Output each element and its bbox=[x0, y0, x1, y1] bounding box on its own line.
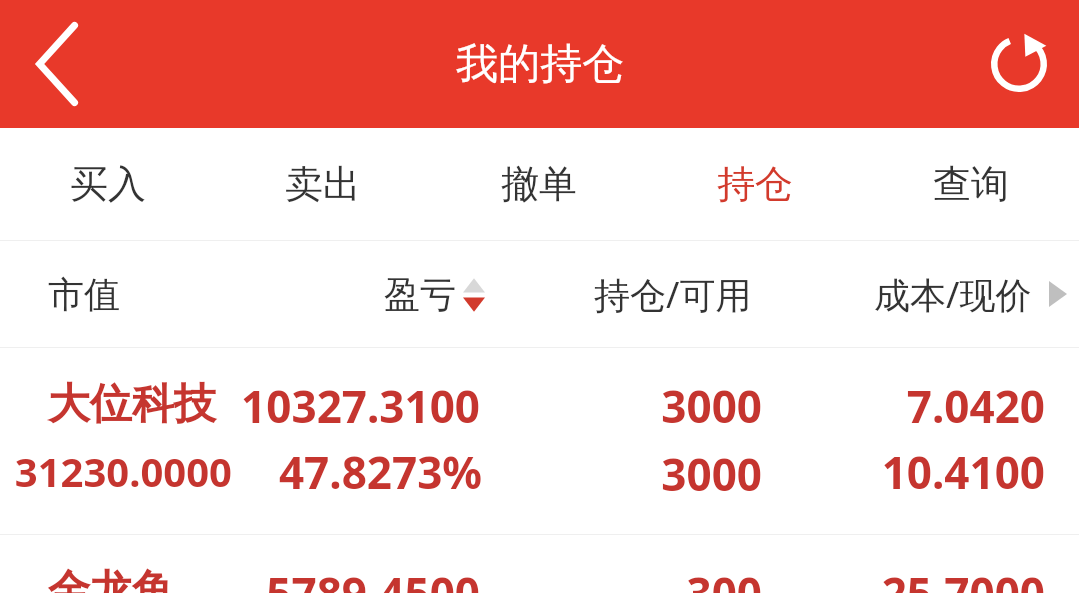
button[interactable]: More columns bbox=[1044, 274, 1072, 314]
staticText: 卖出 bbox=[285, 160, 361, 208]
staticText: 25.7000 bbox=[0, 563, 1045, 593]
staticText: 成本/现价 bbox=[874, 270, 1032, 319]
staticText: 查询 bbox=[933, 160, 1009, 208]
button[interactable]: 金龙鱼 bbox=[0, 535, 1079, 593]
button[interactable]: 大位科技 bbox=[0, 348, 1079, 534]
staticText: 300 bbox=[0, 563, 762, 593]
staticText: 持仓/可用 bbox=[594, 270, 752, 319]
staticText: 5789.4500 bbox=[0, 563, 480, 593]
staticText: 大位科技 bbox=[48, 378, 216, 431]
button[interactable]: 卖出 bbox=[215, 128, 431, 240]
staticText: 撤单 bbox=[501, 160, 577, 208]
button[interactable]: 买入 bbox=[0, 128, 215, 240]
staticText: 盈亏 bbox=[384, 272, 456, 317]
staticText: 我的持仓 bbox=[456, 38, 624, 91]
button[interactable]: 查询 bbox=[863, 128, 1079, 240]
staticText: 持仓 bbox=[717, 160, 793, 208]
staticText: 3000 bbox=[0, 376, 762, 436]
staticText: 10.4100 bbox=[0, 442, 1045, 502]
staticText: 买入 bbox=[70, 160, 146, 208]
button[interactable]: 市值 bbox=[48, 272, 120, 317]
button[interactable]: 盈亏 bbox=[384, 272, 485, 317]
button[interactable]: Refresh bbox=[959, 0, 1079, 128]
staticText: 市值 bbox=[48, 272, 120, 317]
button[interactable]: 撤单 bbox=[431, 128, 647, 240]
staticText: 31230.0000 bbox=[0, 444, 232, 498]
button[interactable]: Back bbox=[0, 0, 116, 128]
button[interactable]: 持仓 bbox=[647, 128, 863, 240]
staticText: 10327.3100 bbox=[0, 376, 480, 436]
staticText: 金龙鱼 bbox=[48, 565, 174, 593]
staticText: 47.8273% bbox=[0, 442, 482, 502]
staticText: 3000 bbox=[0, 444, 762, 504]
button[interactable]: 成本/现价 bbox=[874, 270, 1032, 319]
staticText: 7.0420 bbox=[0, 376, 1045, 436]
button[interactable]: 持仓/可用 bbox=[594, 270, 752, 319]
